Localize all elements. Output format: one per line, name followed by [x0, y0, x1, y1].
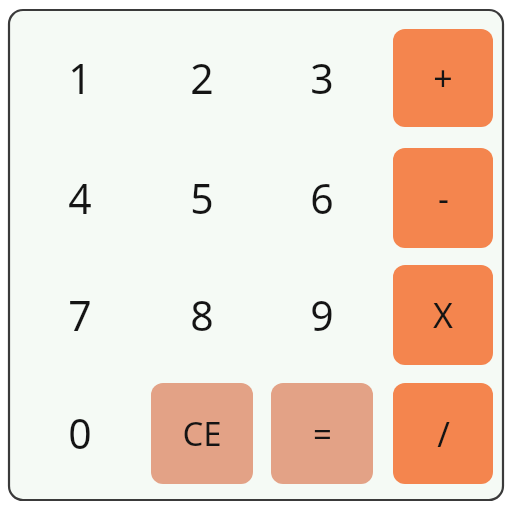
staticText: = [313, 411, 332, 456]
button[interactable]: 9 [261, 255, 383, 375]
staticText: 6 [310, 170, 334, 226]
staticText: + [433, 55, 453, 101]
button[interactable]: Minus [393, 148, 493, 248]
staticText: 1 [68, 50, 92, 106]
button[interactable]: Divide [393, 383, 493, 484]
staticText: 5 [190, 170, 214, 226]
staticText: - [438, 175, 449, 221]
staticText: X [433, 292, 453, 338]
button[interactable]: 4 [19, 138, 141, 258]
button[interactable]: CE [151, 383, 253, 484]
button[interactable]: 8 [141, 255, 263, 375]
staticText: 0 [68, 405, 92, 461]
staticText: 7 [68, 287, 92, 343]
button[interactable]: 7 [19, 255, 141, 375]
staticText: 2 [190, 50, 214, 106]
button[interactable]: Plus [393, 29, 493, 127]
staticText: / [437, 411, 450, 457]
button[interactable]: 0 [19, 373, 141, 493]
button[interactable]: 3 [261, 18, 383, 138]
staticText: 4 [68, 170, 92, 226]
button[interactable]: 6 [261, 138, 383, 258]
button[interactable]: Multiply [393, 265, 493, 365]
button[interactable]: 1 [19, 18, 141, 138]
button[interactable]: 5 [141, 138, 263, 258]
staticText: CE [182, 411, 222, 456]
button[interactable]: = [271, 383, 373, 484]
staticText: 9 [310, 287, 334, 343]
staticText: 3 [310, 50, 334, 106]
button[interactable]: 2 [141, 18, 263, 138]
staticText: 8 [190, 287, 214, 343]
